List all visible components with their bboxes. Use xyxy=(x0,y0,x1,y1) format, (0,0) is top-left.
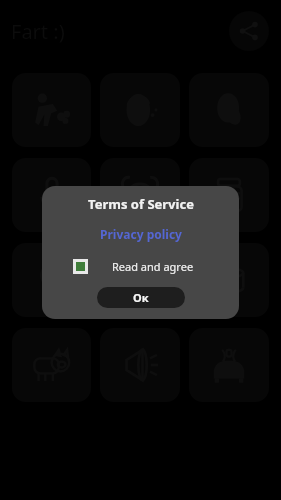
button[interactable]: Read and agree xyxy=(52,256,229,277)
staticText: Read and agree xyxy=(112,259,194,274)
button[interactable]: Sound 4 xyxy=(100,158,180,232)
button[interactable]: Privacy policy xyxy=(96,224,186,244)
staticText: Privacy policy xyxy=(100,226,182,242)
button[interactable]: Oĸ xyxy=(97,287,185,308)
staticText: Fart :) xyxy=(11,18,65,45)
button[interactable]: Sound 5 xyxy=(189,158,269,232)
button[interactable]: Sound 7 xyxy=(100,243,180,317)
staticText: Terms of Service xyxy=(88,195,194,213)
button[interactable]: Sound 6 xyxy=(12,243,91,317)
button[interactable]: Share xyxy=(229,11,269,51)
button[interactable]: Sound 3 xyxy=(12,158,91,232)
staticText: Oĸ xyxy=(133,290,149,305)
button[interactable]: Sound 8 xyxy=(189,243,269,317)
